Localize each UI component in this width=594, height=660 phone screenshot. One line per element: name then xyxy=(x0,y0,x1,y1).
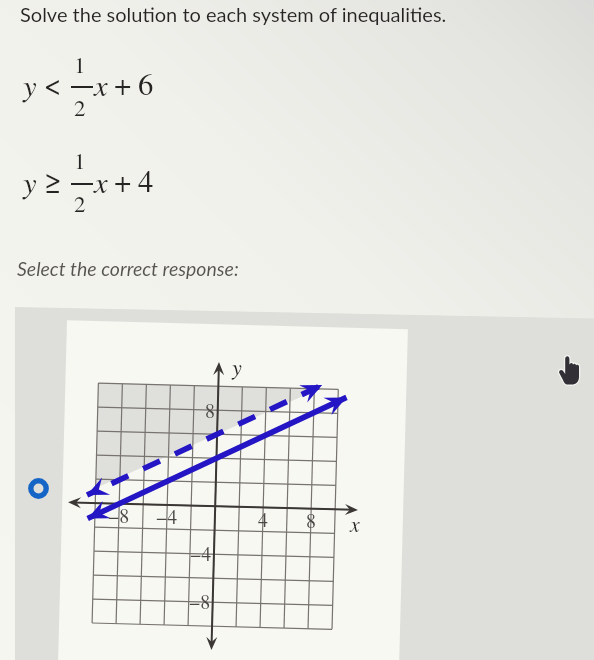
staticText: x xyxy=(94,160,108,201)
staticText: −8 xyxy=(108,502,130,529)
staticText: Solve the solution to each system of ine… xyxy=(20,2,447,26)
staticText: y xyxy=(23,160,37,201)
staticText: y xyxy=(23,63,37,104)
staticText: y xyxy=(232,351,242,380)
staticText: < xyxy=(44,63,62,104)
staticText: 4 xyxy=(138,160,154,201)
staticText: 6 xyxy=(138,63,154,104)
staticText: −4 xyxy=(156,503,178,530)
staticText: −4 xyxy=(190,540,212,567)
staticText: ≥ xyxy=(44,160,62,201)
staticText: + xyxy=(114,63,132,104)
staticText: 4 xyxy=(258,506,268,533)
staticText: 2 xyxy=(74,92,86,123)
staticText: Select the correct response: xyxy=(17,257,239,280)
staticText: + xyxy=(114,160,132,201)
staticText: 8 xyxy=(205,397,215,424)
staticText: 2 xyxy=(74,188,86,219)
staticText: 1 xyxy=(74,145,86,176)
staticText: x xyxy=(94,63,108,104)
staticText: x xyxy=(350,508,360,537)
staticText: 8 xyxy=(306,507,316,534)
button[interactable]: Select this answer xyxy=(28,478,49,499)
staticText: 1 xyxy=(74,49,86,80)
staticText: −8 xyxy=(189,588,211,615)
button[interactable] xyxy=(15,306,594,660)
